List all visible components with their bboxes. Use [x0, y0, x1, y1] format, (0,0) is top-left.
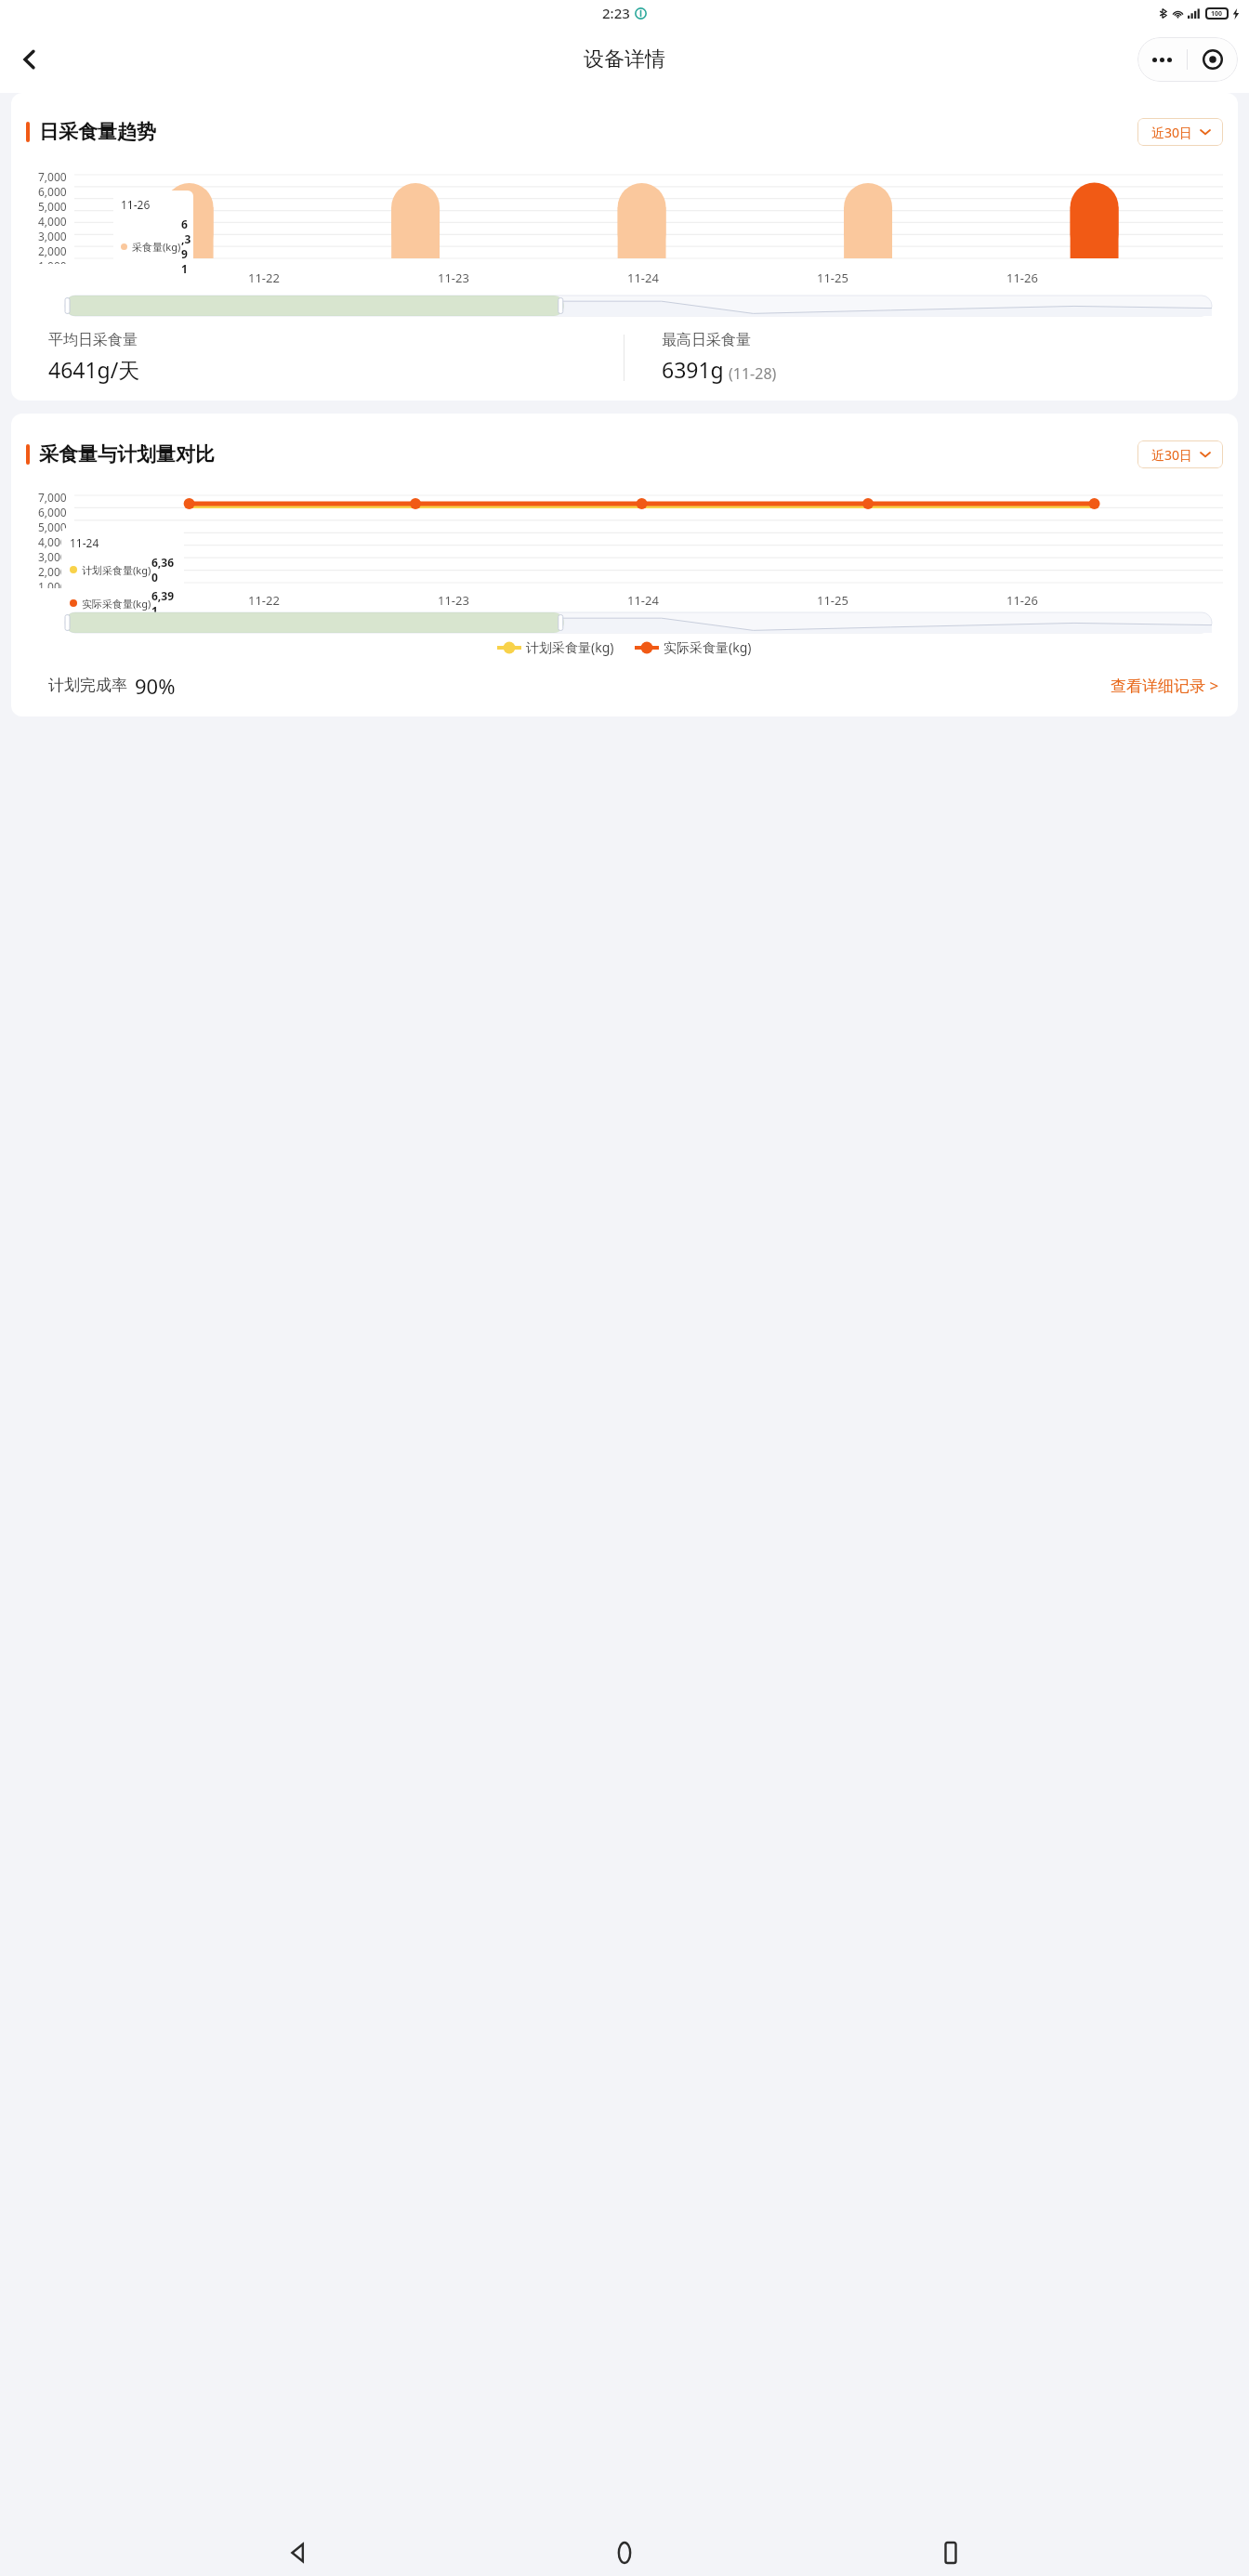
staticText: 11-25: [817, 592, 848, 609]
staticText: 2,000: [38, 564, 67, 579]
staticText: 实际采食量(kg): [664, 638, 752, 656]
staticText: 3,000: [38, 549, 67, 564]
staticText: 计划采食量(kg): [82, 563, 151, 577]
staticText: 11-24: [627, 269, 659, 286]
staticText: 5,000: [38, 199, 67, 214]
staticText: 100: [1211, 9, 1223, 19]
staticText: 4,000: [38, 214, 67, 229]
staticText: (11-28): [729, 363, 777, 384]
staticText: 7,000: [38, 169, 67, 184]
staticText: 11-24: [627, 592, 659, 609]
staticText: 查看详细记录 >: [1111, 675, 1219, 696]
staticText: 采食量与计划量对比: [39, 442, 215, 467]
staticText: 实际采食量(kg): [82, 597, 151, 611]
button[interactable]: 返回: [7, 37, 52, 82]
staticText: 3,000: [38, 229, 67, 243]
button[interactable]: 更多: [1137, 37, 1187, 82]
staticText: 近30日: [1151, 124, 1193, 141]
staticText: 11-23: [438, 592, 469, 609]
button[interactable]: 近30日: [1137, 440, 1223, 468]
staticText: 90%: [135, 672, 176, 700]
staticText: 6,000: [38, 505, 67, 519]
button[interactable]: 近30日: [1137, 118, 1223, 146]
staticText: 最高日采食量: [662, 331, 751, 349]
staticText: 11-24: [70, 535, 99, 550]
staticText: 6,000: [38, 184, 67, 199]
staticText: 7,000: [38, 490, 67, 505]
staticText: 计划采食量(kg): [526, 638, 614, 656]
staticText: 2:23: [602, 4, 630, 22]
button[interactable]: 查看详细记录 >: [1107, 671, 1223, 700]
staticText: 11-26: [121, 197, 151, 212]
staticText: 4641g/天: [48, 355, 140, 384]
button[interactable]: 目标: [1188, 37, 1238, 82]
staticText: 平均日采食量: [48, 331, 138, 349]
button[interactable]: 最近任务: [923, 2530, 979, 2576]
staticText: 日采食量趋势: [39, 120, 156, 144]
staticText: 11-22: [248, 269, 280, 286]
button[interactable]: 主页: [597, 2530, 652, 2576]
staticText: 设备详情: [584, 46, 665, 72]
staticText: 6391g: [662, 355, 724, 384]
staticText: 11-26: [1006, 269, 1038, 286]
staticText: 计划完成率: [48, 676, 127, 695]
staticText: 6,391: [181, 217, 186, 276]
staticText: 5,000: [38, 519, 67, 534]
staticText: 2,000: [38, 243, 67, 258]
staticText: 6,360: [151, 555, 176, 585]
staticText: 11-22: [248, 592, 280, 609]
staticText: 4,000: [38, 534, 67, 549]
staticText: 1,000: [38, 258, 67, 264]
staticText: 11-23: [438, 269, 469, 286]
staticText: 11-25: [817, 269, 848, 286]
staticText: 6,391: [151, 588, 176, 618]
button[interactable]: 返回: [270, 2530, 326, 2576]
staticText: 1,000: [38, 579, 67, 588]
staticText: 近30日: [1151, 446, 1193, 464]
staticText: 采食量(kg): [132, 240, 181, 254]
staticText: 11-26: [1006, 592, 1038, 609]
